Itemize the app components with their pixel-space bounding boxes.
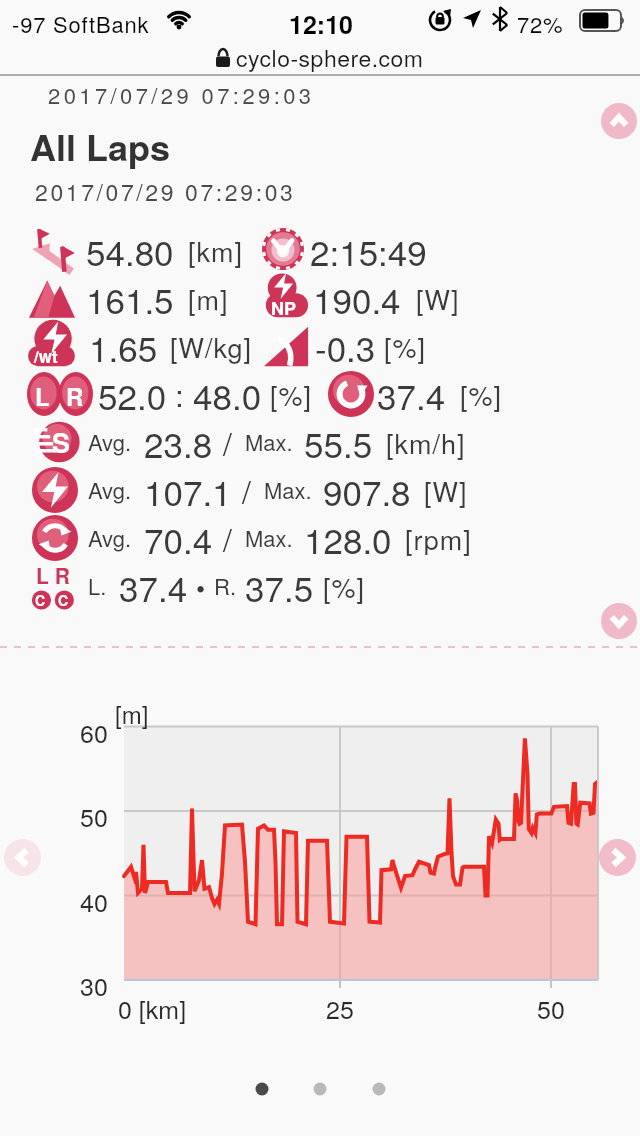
staticText: 50	[537, 990, 565, 1026]
staticText: 0 [km]	[118, 990, 187, 1026]
staticText: 12:10	[289, 6, 353, 42]
staticText: NP	[271, 295, 297, 321]
staticText: :	[167, 373, 193, 416]
staticText: 37.4	[119, 562, 188, 610]
staticText: 2:15:49	[310, 226, 427, 274]
staticText: L R	[36, 560, 70, 590]
staticText: R.	[214, 570, 237, 602]
staticText: 54.80	[86, 226, 174, 274]
staticText: 2017/07/29 07:29:03	[35, 175, 296, 208]
staticText: [km/h]	[386, 423, 466, 462]
staticText: [rpm]	[405, 519, 472, 558]
staticText: 25	[326, 990, 354, 1026]
staticText: [km]	[188, 231, 244, 270]
staticText: 190.4	[313, 274, 401, 322]
staticText: 107.1	[144, 466, 232, 514]
staticText: •	[196, 568, 206, 605]
staticText: S	[52, 423, 71, 462]
staticText: /wt	[34, 344, 58, 368]
button[interactable]	[601, 603, 637, 639]
staticText: 37.5	[245, 562, 314, 610]
button[interactable]	[601, 103, 637, 139]
staticText: Avg.	[88, 426, 132, 458]
staticText: /	[242, 467, 251, 513]
staticText: C	[35, 590, 46, 610]
staticText: 128.0	[304, 514, 392, 562]
staticText: [%]	[384, 327, 427, 366]
staticText: 40	[80, 883, 108, 919]
staticText: Max.	[264, 474, 312, 506]
staticText: /	[223, 515, 232, 561]
staticText: 1.65	[89, 322, 158, 370]
staticText: [m]	[188, 279, 229, 318]
staticText: [%]	[270, 375, 313, 414]
staticText: 72%	[517, 8, 564, 40]
staticText: Avg.	[88, 474, 132, 506]
staticText: 37.4	[377, 370, 446, 418]
staticText: [W]	[416, 279, 460, 318]
staticText: Max.	[245, 522, 293, 554]
staticText: 55.5	[304, 418, 373, 466]
button[interactable]	[4, 839, 41, 876]
staticText: C	[58, 590, 69, 610]
staticText: 50	[80, 798, 108, 834]
staticText: [%]	[323, 567, 366, 606]
staticText: All Laps	[30, 120, 171, 172]
staticText: [W]	[424, 471, 468, 510]
staticText: [m]	[115, 696, 149, 730]
button[interactable]: cyclo-sphere.com	[0, 40, 640, 74]
staticText: cyclo-sphere.com	[236, 41, 424, 74]
staticText: Avg.	[88, 522, 132, 554]
staticText: 52.0	[98, 370, 167, 418]
staticText: Max.	[245, 426, 293, 458]
staticText: 907.8	[323, 466, 411, 514]
staticText: L.	[88, 570, 107, 602]
staticText: 23.8	[144, 418, 213, 466]
staticText: -97 SoftBank	[12, 8, 150, 40]
staticText: 30	[80, 967, 108, 1003]
staticText: R	[66, 379, 84, 413]
staticText: /	[223, 419, 232, 465]
staticText: L	[35, 379, 50, 413]
staticText: -0.3	[315, 322, 376, 370]
staticText: [W/kg]	[170, 327, 253, 366]
staticText: 60	[80, 714, 108, 750]
staticText: 70.4	[144, 514, 213, 562]
staticText: 48.0	[193, 370, 262, 418]
button[interactable]	[599, 839, 636, 876]
staticText: 2017/07/29 07:29:03	[48, 79, 315, 111]
staticText: 161.5	[86, 274, 174, 322]
staticText: [%]	[460, 375, 503, 414]
